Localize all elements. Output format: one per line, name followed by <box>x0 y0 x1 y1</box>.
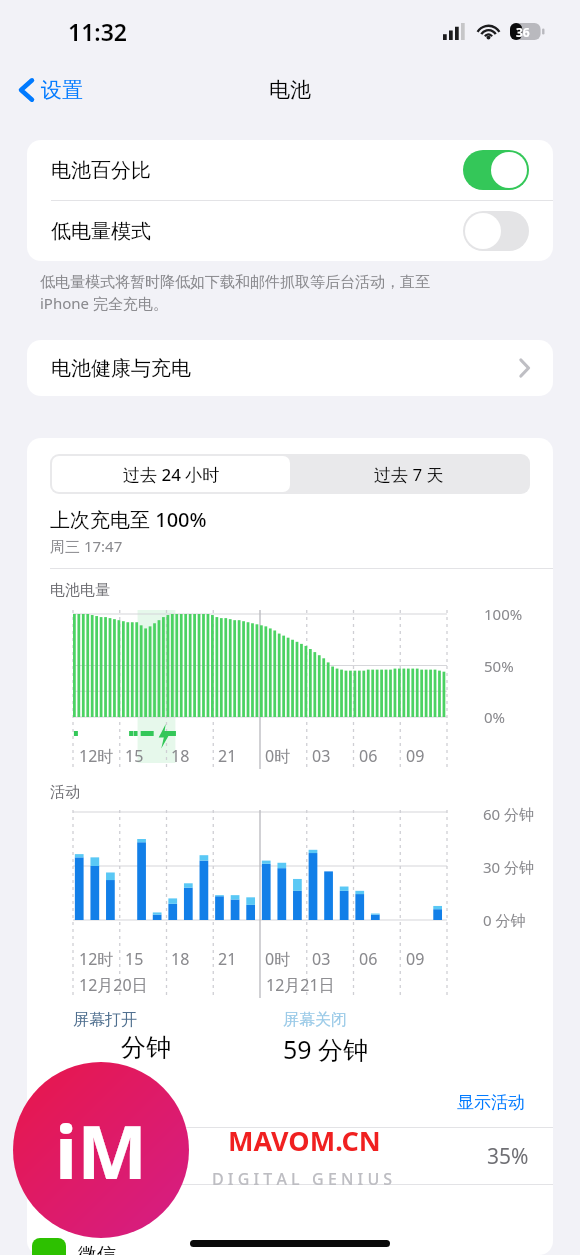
staticText: 06 <box>359 745 378 767</box>
staticText: 屏幕关闭 <box>283 1010 347 1030</box>
staticText: 12时 <box>79 948 114 970</box>
staticText: 显示活动 <box>457 1092 525 1113</box>
staticText: MAVOM.CN <box>228 1122 381 1159</box>
staticText: 18 <box>171 745 190 767</box>
staticText: 活动 <box>50 783 80 802</box>
staticText: 21 <box>218 745 237 767</box>
staticText: 12月20日 <box>79 974 148 996</box>
staticText: 36 <box>516 24 530 40</box>
staticText: 电池电量 <box>50 581 110 600</box>
button[interactable]: 显示活动 <box>453 1088 529 1117</box>
staticText: 0 分钟 <box>483 910 526 930</box>
staticText: 电池百分比 <box>51 158 151 183</box>
staticText: 0时 <box>265 948 291 970</box>
staticText: 30 分钟 <box>483 857 535 877</box>
staticText: 低电量模式将暂时降低如下载和邮件抓取等后台活动，直至 iPhone 完全充电。 <box>40 273 430 314</box>
button[interactable]: 低电量模式 <box>27 201 553 261</box>
staticText: 03 <box>312 948 331 970</box>
staticText: 35% <box>487 1142 529 1171</box>
staticText: 分钟 <box>121 1032 171 1063</box>
button[interactable]: 过去 7 天 <box>290 456 528 492</box>
staticText: 15 <box>125 745 144 767</box>
staticText: 59 分钟 <box>283 1032 369 1066</box>
button[interactable]: 过去 24 小时 <box>52 456 290 492</box>
staticText: 0时 <box>265 745 291 767</box>
staticText: 周三 17:47 <box>50 536 123 556</box>
staticText: D I G I T A L G E N I U S <box>212 1168 393 1190</box>
staticText: 21 <box>218 948 237 970</box>
staticText: iM <box>55 1100 147 1201</box>
staticText: 屏幕打开 <box>73 1010 137 1030</box>
staticText: 上次充电至 100% <box>50 506 207 533</box>
staticText: 100% <box>484 604 523 624</box>
staticText: 12时 <box>79 745 114 767</box>
button[interactable]: 电池百分比 <box>27 140 553 200</box>
staticText: 0% <box>484 707 506 727</box>
staticText: 设置 <box>41 77 83 103</box>
staticText: 09 <box>406 745 425 767</box>
staticText: 09 <box>406 948 425 970</box>
button[interactable]: 设置 <box>14 73 89 107</box>
staticText: 过去 7 天 <box>374 463 444 486</box>
staticText: 03 <box>312 745 331 767</box>
staticText: 过去 24 小时 <box>123 463 220 486</box>
staticText: 电池健康与充电 <box>51 356 191 381</box>
staticText: 15 <box>125 948 144 970</box>
staticText: 06 <box>359 948 378 970</box>
button[interactable]: 电池健康与充电 <box>27 340 553 396</box>
staticText: 低电量模式 <box>51 219 151 244</box>
staticText: 12月21日 <box>266 974 335 996</box>
staticText: 50% <box>484 656 514 676</box>
staticText: 60 分钟 <box>483 804 535 824</box>
staticText: 电池 <box>269 77 311 103</box>
staticText: 微信 <box>78 1243 116 1255</box>
staticText: 11:32 <box>68 16 127 47</box>
staticText: 18 <box>171 948 190 970</box>
